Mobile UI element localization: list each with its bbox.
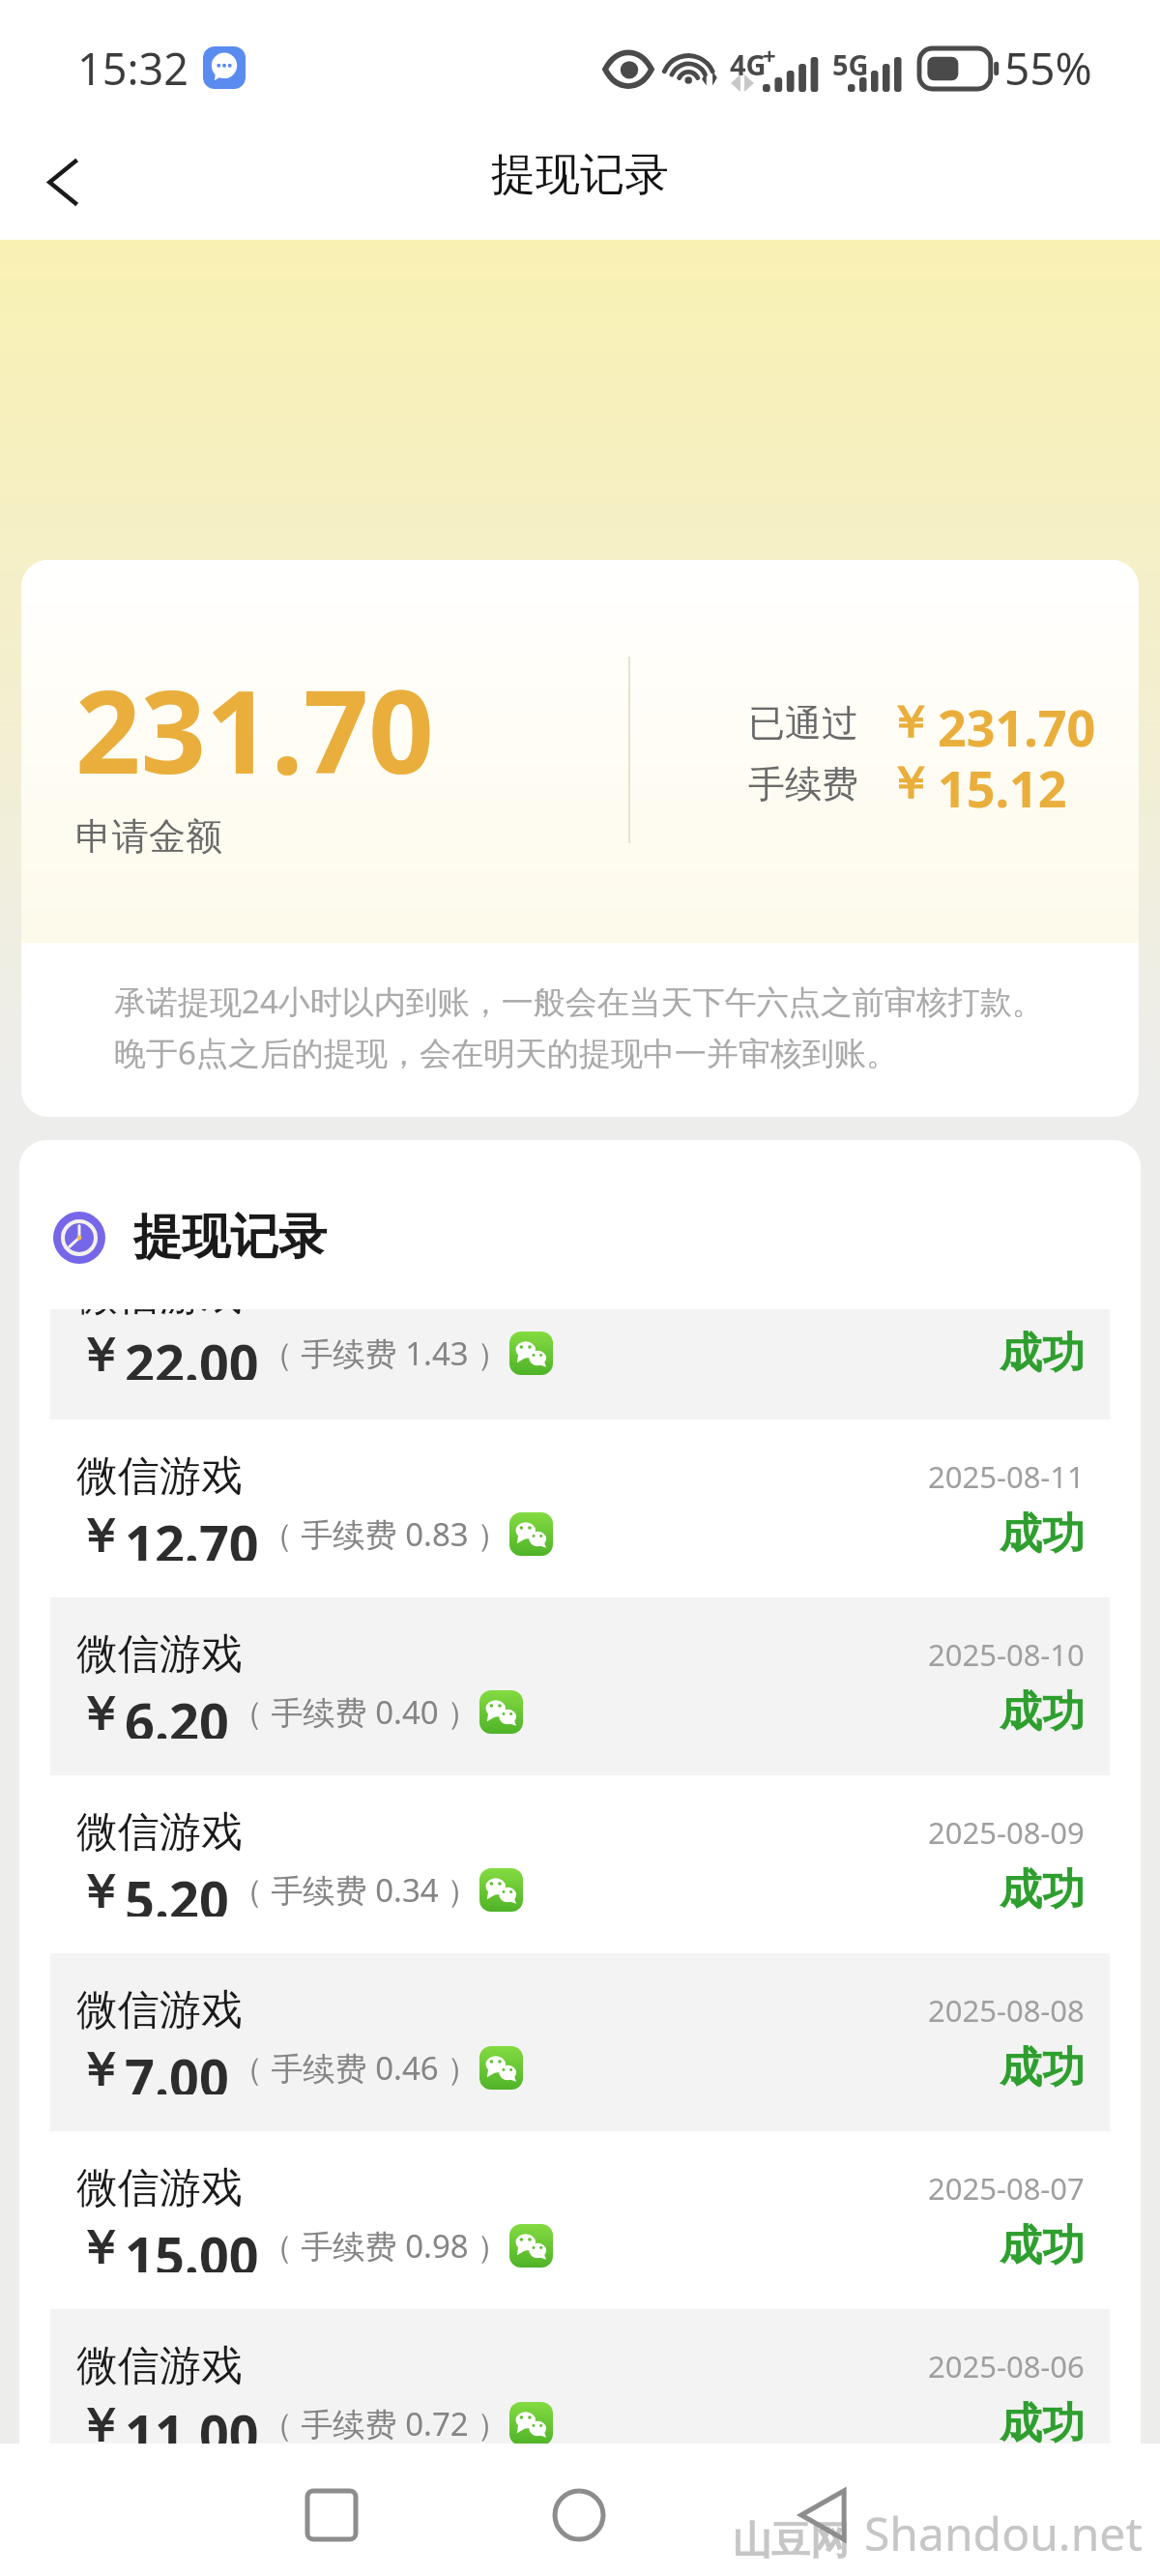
staticText: （ 手续费 1.43 ） — [261, 1332, 509, 1375]
staticText: 5G — [832, 45, 869, 83]
button[interactable]: 微信游戏 — [50, 2309, 1110, 2487]
button[interactable]: 微信游戏 — [50, 1953, 1110, 2131]
staticText: 2025-08-11 — [928, 1456, 1085, 1497]
staticText: 微信游戏 — [76, 1450, 243, 1503]
other: WiFi — [666, 46, 722, 91]
staticText: 2025-08-06 — [928, 2346, 1085, 2386]
staticText: （ 手续费 0.72 ） — [261, 2402, 509, 2445]
staticText: 微信游戏 — [76, 2162, 243, 2214]
staticText: 12.70 — [125, 1508, 259, 1561]
other: Battery — [919, 48, 999, 89]
staticText: 成功 — [1000, 2397, 1085, 2450]
staticText: （ 手续费 0.83 ） — [261, 1512, 509, 1556]
staticText: 成功 — [1000, 2219, 1085, 2272]
other: WeChat — [479, 2046, 523, 2090]
button[interactable]: Recents — [285, 2448, 378, 2576]
staticText: 成功 — [1000, 1327, 1085, 1380]
button[interactable]: Home — [533, 2448, 625, 2576]
staticText: 231.70 — [938, 692, 1096, 753]
button[interactable]: 微信游戏 — [50, 1309, 1110, 1420]
button[interactable]: Back — [778, 2448, 871, 2576]
other: WeChat — [479, 1868, 523, 1912]
staticText: 4G — [730, 45, 767, 83]
staticText: 成功 — [1000, 1863, 1085, 1917]
staticText: 成功 — [1000, 2041, 1085, 2094]
staticText: 微信游戏 — [76, 1628, 243, 1681]
other: Privacy — [604, 52, 652, 85]
other: WeChat — [509, 1332, 553, 1375]
staticText: 山豆网 — [733, 2516, 849, 2564]
staticText: 申请金额 — [75, 813, 222, 860]
staticText: 15.12 — [938, 753, 1067, 814]
staticText: 15.00 — [125, 2219, 259, 2272]
staticText: 成功 — [1000, 1508, 1085, 1561]
staticText: 2025-08-09 — [928, 1812, 1085, 1853]
button[interactable]: 微信游戏 — [50, 1420, 1110, 1597]
other: WeChat — [509, 1512, 553, 1556]
staticText: 22.00 — [125, 1327, 259, 1380]
button[interactable]: 微信游戏 — [50, 2131, 1110, 2309]
staticText: 微信游戏 — [76, 1806, 243, 1859]
other: WeChat — [509, 2224, 553, 2268]
staticText: 55% — [1004, 38, 1092, 99]
staticText: ￥ — [76, 2397, 123, 2450]
staticText: ￥ — [887, 756, 932, 812]
staticText: 15:32 — [77, 39, 189, 98]
staticText: ￥ — [76, 1685, 123, 1739]
staticText: （ 手续费 0.34 ） — [231, 1868, 479, 1912]
button[interactable]: Back — [19, 137, 108, 226]
staticText: + — [763, 40, 776, 72]
staticText: 已通过 — [748, 700, 858, 746]
staticText: （ 手续费 0.40 ） — [231, 1690, 479, 1734]
staticText: ￥ — [76, 1863, 123, 1917]
staticText: ￥ — [76, 1327, 123, 1380]
staticText: Shandou.net — [864, 2502, 1143, 2564]
staticText: 2025-08-07 — [928, 2168, 1085, 2209]
button[interactable]: 微信游戏 — [50, 1597, 1110, 1775]
staticText: 成功 — [1000, 1685, 1085, 1739]
button[interactable]: 微信游戏 — [50, 1775, 1110, 1953]
other: WeChat — [509, 2402, 553, 2445]
staticText: （ 手续费 0.98 ） — [261, 2224, 509, 2268]
staticText: 提现记录 — [133, 1207, 327, 1268]
staticText: 231.70 — [75, 652, 434, 807]
staticText: 7.00 — [125, 2041, 229, 2094]
staticText: 提现记录 — [491, 147, 669, 203]
staticText: 微信游戏 — [76, 1309, 243, 1322]
staticText: ￥ — [76, 2041, 123, 2094]
staticText: （ 手续费 0.46 ） — [231, 2046, 479, 2090]
staticText: 2025-08-10 — [928, 1634, 1085, 1675]
other: WeChat — [479, 1690, 523, 1734]
staticText: 微信游戏 — [76, 1984, 243, 2036]
staticText: 晚于6点之后的提现，会在明天的提现中一并审核到账。 — [114, 1031, 898, 1074]
staticText: 承诺提现24小时以内到账，一般会在当天下午六点之前审核打款。 — [114, 980, 1044, 1023]
staticText: 微信游戏 — [76, 2340, 243, 2392]
staticText: 6.20 — [125, 1685, 229, 1739]
staticText: 5.20 — [125, 1863, 229, 1917]
staticText: 11.00 — [125, 2397, 259, 2450]
staticText: ￥ — [76, 2219, 123, 2272]
staticText: 手续费 — [748, 761, 858, 807]
staticText: 2025-08-12 — [928, 1309, 1085, 1316]
staticText: 2025-08-08 — [928, 1990, 1085, 2031]
staticText: ￥ — [887, 695, 932, 751]
staticText: ￥ — [76, 1508, 123, 1561]
